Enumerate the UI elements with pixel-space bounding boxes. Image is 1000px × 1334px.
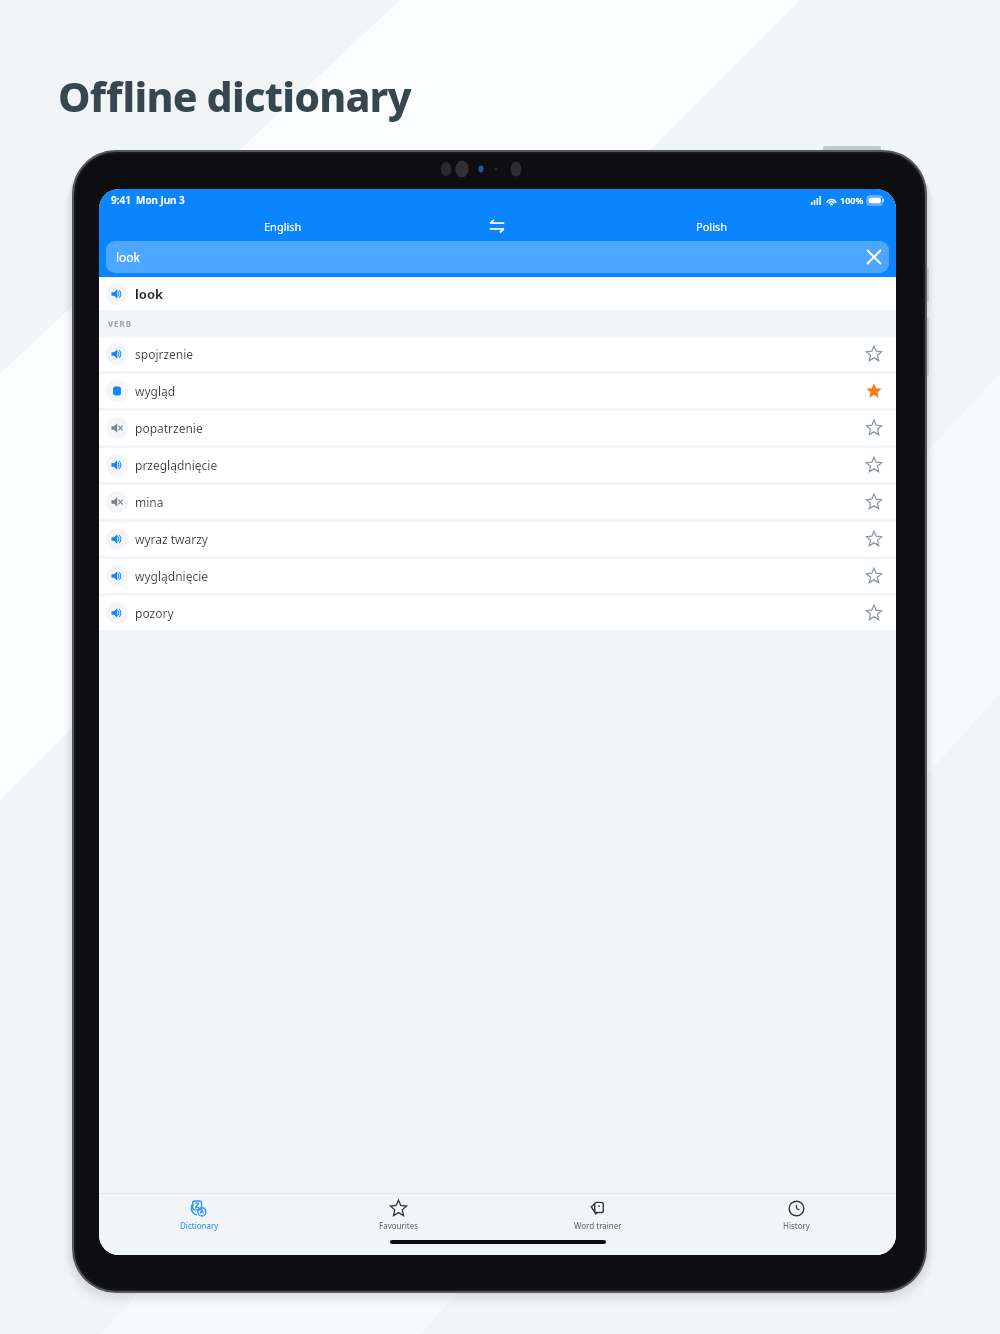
button[interactable]: Play pronunciation [99,559,896,593]
staticText: 9:41 Mon Jun 3 [111,193,185,207]
button[interactable]: Polish [527,211,896,241]
button[interactable]: Play pronunciation [106,602,128,624]
staticText: Offline dictionary [58,68,411,124]
staticText: spojrzenie [135,346,194,362]
button[interactable]: Dictionary [99,1194,299,1237]
staticText: mina [135,494,164,510]
staticText: look [116,249,141,265]
button[interactable]: Add to favourites [856,596,892,630]
staticText: przeglądnięcie [135,457,218,473]
button[interactable]: Add to favourites [856,448,892,482]
button[interactable]: Favourites [299,1194,498,1237]
button[interactable]: Clear search [859,242,889,272]
button[interactable]: Play pronunciation [99,448,896,482]
staticText: 100% [840,194,864,206]
button[interactable]: Play pronunciation [99,277,896,310]
button[interactable]: Add to favourites [856,485,892,519]
button[interactable]: History [697,1194,896,1237]
button[interactable]: Play pronunciation [106,565,128,587]
staticText: popatrzenie [135,420,203,436]
button[interactable]: Play pronunciation [99,485,896,519]
button[interactable]: Play pronunciation [106,454,128,476]
button[interactable]: English [99,211,467,241]
staticText: wyraz twarzy [135,531,208,547]
button[interactable]: Play pronunciation [99,411,896,445]
button[interactable]: Swap languages [467,211,527,241]
button[interactable]: look [106,241,889,273]
staticText: look [135,285,164,303]
button[interactable]: Play pronunciation [106,380,128,402]
staticText: pozory [135,605,174,621]
button[interactable]: Play pronunciation [99,374,896,408]
button[interactable]: Add to favourites [856,559,892,593]
button[interactable]: Play pronunciation [106,283,128,305]
staticText: wygląd [135,383,176,399]
button[interactable]: Add to favourites [856,522,892,556]
staticText: VERB [108,318,132,329]
staticText: Dictionary [180,1220,219,1231]
staticText: Polish [696,219,728,234]
staticText: wyglądnięcie [135,568,209,584]
button[interactable]: Remove from favourites [856,374,892,408]
button[interactable]: Word trainer [498,1194,697,1237]
staticText: Word trainer [574,1220,622,1231]
staticText: History [783,1220,810,1231]
button[interactable]: Play pronunciation [99,522,896,556]
button[interactable]: Add to favourites [856,411,892,445]
staticText: Favourites [379,1220,419,1231]
button[interactable]: Play pronunciation [106,528,128,550]
button[interactable]: Play pronunciation [106,491,128,513]
button[interactable]: Play pronunciation [106,417,128,439]
staticText: English [264,219,302,234]
button[interactable]: Play pronunciation [99,596,896,630]
button[interactable]: Play pronunciation [106,343,128,365]
button[interactable]: Add to favourites [856,337,892,371]
button[interactable]: Play pronunciation [99,337,896,371]
